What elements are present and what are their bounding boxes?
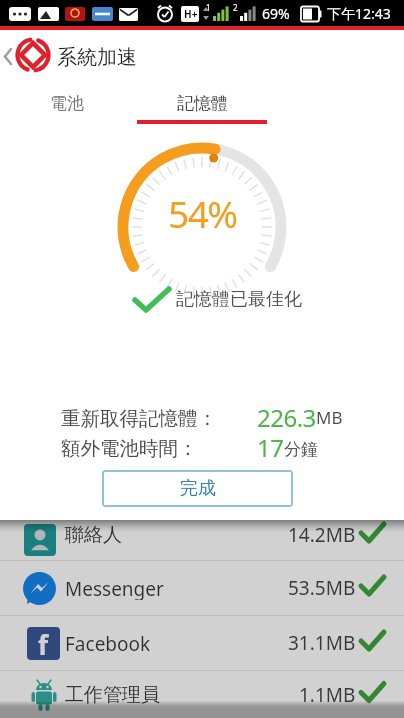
button[interactable] — [0, 671, 404, 718]
button[interactable]: 記憶體 — [137, 81, 267, 125]
button[interactable] — [0, 561, 404, 615]
button[interactable]: 完成 — [102, 470, 293, 507]
staticText: 54% — [168, 188, 237, 238]
staticText: 1.1MB — [299, 682, 356, 706]
staticText: 系統加速 — [57, 45, 137, 70]
staticText: 重新取得記憶體： — [61, 406, 217, 428]
staticText: 1 — [206, 2, 211, 13]
staticText: 14.2MB — [288, 522, 356, 546]
staticText: 69% — [262, 4, 290, 23]
staticText: MB — [316, 406, 343, 429]
staticText: 226.3 — [257, 401, 316, 431]
staticText: 17 — [257, 431, 284, 461]
staticText: 記憶體已最佳化 — [176, 288, 302, 310]
staticText: H+ — [184, 7, 198, 21]
staticText: 額外電池時間： — [61, 436, 198, 458]
staticText: 聯絡人 — [65, 523, 122, 547]
staticText: 記憶體 — [177, 93, 228, 114]
staticText: 電池 — [50, 93, 84, 114]
staticText: 2 — [233, 2, 238, 13]
button[interactable]: 電池 — [0, 81, 133, 125]
button[interactable] — [0, 30, 16, 84]
staticText: 53.5MB — [288, 575, 356, 599]
staticText: 下午12:43 — [327, 4, 391, 23]
staticText: 分鐘 — [284, 439, 318, 460]
staticText: 工作管理員 — [65, 683, 160, 707]
staticText: 31.1MB — [288, 630, 356, 654]
staticText: Messenger — [65, 576, 164, 600]
staticText: f — [38, 627, 49, 660]
button[interactable] — [0, 616, 404, 670]
staticText: Facebook — [65, 631, 151, 655]
button[interactable] — [0, 520, 404, 560]
staticText: 完成 — [180, 477, 216, 500]
